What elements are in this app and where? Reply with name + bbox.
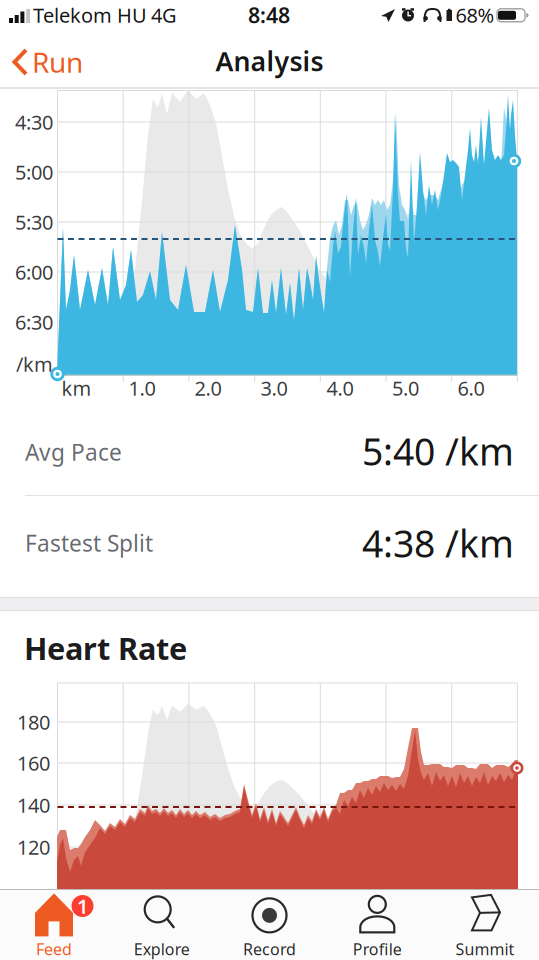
staticText: 3.0 xyxy=(260,375,287,401)
staticText: Summit xyxy=(456,938,515,960)
staticText: Profile xyxy=(353,938,402,960)
staticText: 120 xyxy=(17,834,50,860)
staticText: 5:30 xyxy=(15,209,53,235)
staticText: km xyxy=(61,375,91,401)
staticText: 140 xyxy=(17,792,50,818)
staticText: 8:48 xyxy=(248,1,290,29)
staticText: Heart Rate xyxy=(24,628,187,668)
staticText: 4G xyxy=(151,2,177,28)
button[interactable]: Feed xyxy=(2,891,106,959)
staticText: Record xyxy=(243,938,296,960)
staticText: 1 xyxy=(77,893,88,919)
staticText: Analysis xyxy=(215,43,323,79)
staticText: /km xyxy=(16,351,53,377)
staticText: Telekom HU xyxy=(33,2,147,28)
staticText: Fastest Split xyxy=(25,528,153,558)
staticText: 1.0 xyxy=(128,375,155,401)
staticText: 4:38 /km xyxy=(362,518,514,568)
staticText: 160 xyxy=(17,750,50,776)
staticText: 4.0 xyxy=(326,375,353,401)
staticText: 5:00 xyxy=(15,159,53,185)
staticText: 2.0 xyxy=(194,375,221,401)
staticText: 6:30 xyxy=(15,309,53,335)
staticText: Feed xyxy=(36,938,72,960)
staticText: Explore xyxy=(134,938,190,960)
staticText: Run xyxy=(32,43,83,81)
staticText: Avg Pace xyxy=(25,437,122,467)
button[interactable]: Record xyxy=(217,891,321,959)
button[interactable]: Summit xyxy=(433,891,537,959)
staticText: 68% xyxy=(455,2,494,28)
staticText: 6.0 xyxy=(457,375,484,401)
staticText: 4:30 xyxy=(15,109,53,135)
button[interactable]: Back xyxy=(10,40,86,84)
button[interactable]: Explore xyxy=(110,891,214,959)
staticText: 5.0 xyxy=(392,375,419,401)
staticText: 180 xyxy=(17,709,50,735)
staticText: 6:00 xyxy=(15,259,53,285)
staticText: 5:40 /km xyxy=(362,426,514,476)
button[interactable]: Profile xyxy=(325,891,429,959)
